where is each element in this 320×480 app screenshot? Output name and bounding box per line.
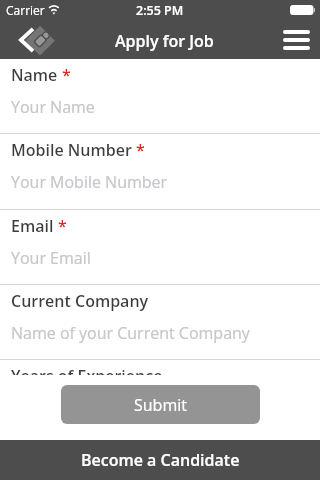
staticText: * xyxy=(136,139,145,161)
staticText: Name xyxy=(11,64,58,86)
staticText: Current Company xyxy=(11,290,149,312)
staticText: Your Email xyxy=(11,247,91,269)
staticText: Years of Experience xyxy=(11,365,163,375)
button[interactable]: Back xyxy=(0,20,58,59)
staticText: Apply for Job xyxy=(115,30,214,52)
button[interactable]: Become a Candidate xyxy=(0,440,320,480)
button[interactable]: Menu xyxy=(276,20,320,59)
staticText: 2:55 PM xyxy=(136,2,184,19)
staticText: * xyxy=(58,215,67,237)
staticText: Mobile Number xyxy=(11,139,132,161)
staticText: Submit xyxy=(134,394,187,416)
staticText: Email xyxy=(11,215,54,237)
staticText: * xyxy=(62,64,71,86)
staticText: Carrier xyxy=(6,2,45,18)
staticText: Your Name xyxy=(11,96,95,118)
staticText: Your Mobile Number xyxy=(11,171,168,193)
staticText: Name of your Current Company xyxy=(11,322,250,344)
button[interactable]: Submit xyxy=(61,385,260,424)
staticText: Become a Candidate xyxy=(81,449,240,471)
